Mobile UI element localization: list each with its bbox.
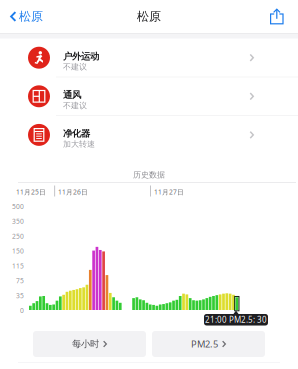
staticText: 350	[12, 217, 24, 226]
staticText: 0	[20, 306, 24, 315]
staticText: 不建议	[63, 62, 87, 72]
staticText: 净化器	[63, 128, 90, 139]
button[interactable]: 净化器	[0, 116, 298, 154]
button[interactable]: 户外运动	[0, 39, 298, 77]
staticText: 每小时	[72, 338, 99, 350]
staticText: 松原	[19, 9, 43, 24]
staticText: 250	[12, 232, 24, 241]
staticText: PM2.5	[191, 338, 218, 350]
button[interactable]: 每小时	[33, 331, 146, 357]
button[interactable]: Share	[270, 5, 298, 28]
staticText: 21:00 PM2.5: 30	[205, 314, 267, 325]
staticText: 11月27日	[154, 187, 184, 196]
button[interactable]: PM2.5	[152, 331, 265, 357]
staticText: 通风	[63, 89, 81, 101]
button[interactable]: 松原	[0, 4, 43, 29]
staticText: 户外运动	[63, 51, 99, 62]
staticText: 11月26日	[58, 187, 88, 196]
staticText: 历史数据	[133, 170, 165, 180]
staticText: 松原	[137, 9, 161, 24]
staticText: 不建议	[63, 101, 87, 110]
staticText: 加大转速	[63, 139, 95, 149]
staticText: 11月25日	[16, 187, 46, 196]
staticText: 150	[12, 247, 24, 255]
staticText: 115	[12, 261, 24, 270]
button[interactable]: 通风	[0, 77, 298, 115]
staticText: 35	[16, 291, 24, 300]
staticText: 500	[12, 202, 24, 211]
staticText: 75	[16, 276, 24, 285]
